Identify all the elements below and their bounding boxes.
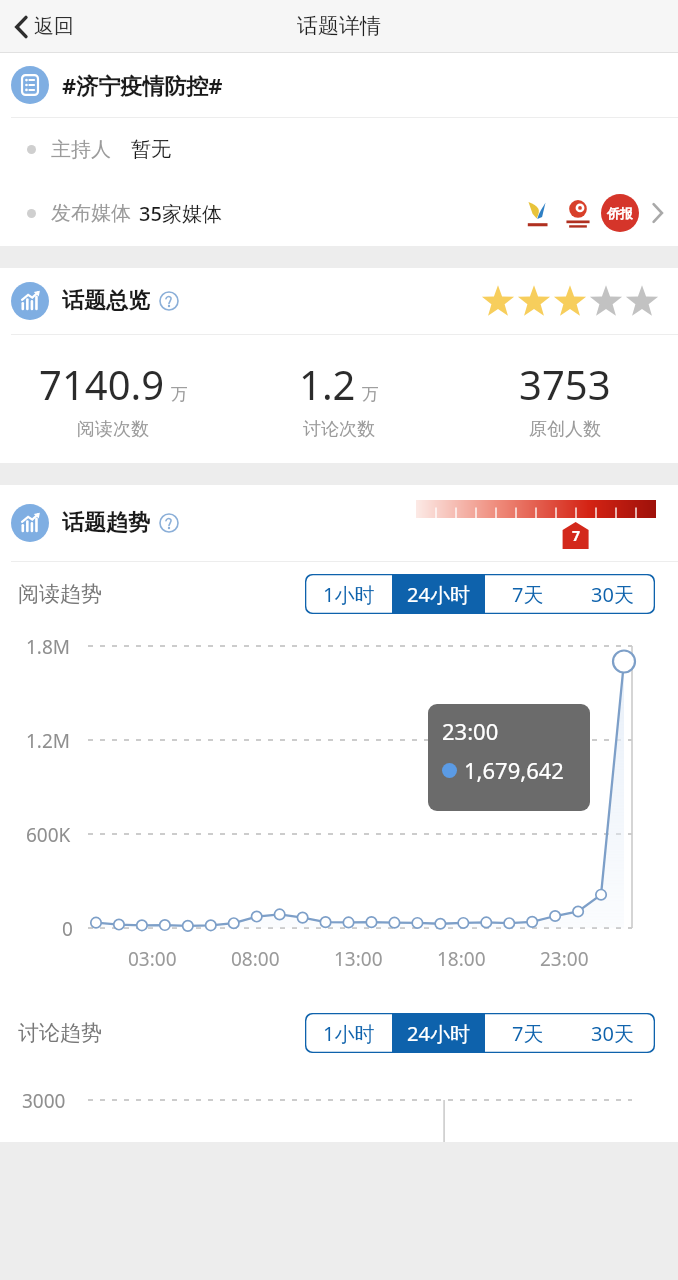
staticText: 08:00 [231,946,280,972]
staticText: 讨论趋势 [18,1020,102,1046]
button[interactable]: 热度等级 7 [416,499,656,547]
button[interactable]: 24小时 [392,574,485,614]
staticText: 返回 [34,14,74,39]
staticText: 话题趋势 [62,509,150,537]
staticText: 话题总览 [62,287,150,315]
button[interactable]: 24小时 [392,1013,485,1053]
button[interactable]: 1.2 [226,357,452,441]
button[interactable]: 30天 [570,1013,655,1053]
staticText: 600K [26,822,71,848]
staticText: 30天 [591,581,634,608]
staticText: 话题详情 [297,13,381,39]
staticText: 1,679,642 [464,755,564,785]
staticText: 7天 [512,581,544,608]
staticText: 18:00 [437,946,486,972]
staticText: 7天 [512,1020,544,1047]
staticText: 3753 [519,357,611,411]
staticText: 1小时 [323,581,375,608]
staticText: 7 [572,526,581,545]
staticText: 13:00 [334,946,383,972]
staticText: 1.8M [26,634,71,660]
staticText: 7140.9 [39,357,165,411]
button[interactable]: #济宁疫情防控# [0,53,678,117]
other: 返回 [14,15,29,39]
button[interactable]: 1小时 [305,574,392,614]
staticText: 23:00 [442,716,499,746]
staticText: 原创人数 [529,418,601,441]
staticText: 03:00 [128,946,177,972]
button[interactable]: 7140.9 [0,357,226,441]
button[interactable]: 返回 [0,6,90,47]
staticText: 万 [362,384,379,405]
staticText: 1.2 [299,357,356,411]
staticText: 23:00 [540,946,589,972]
staticText: 1.2M [26,728,71,754]
staticText: 3000 [22,1088,66,1114]
staticText: 30天 [591,1020,634,1047]
button[interactable]: 3753 [452,357,678,441]
staticText: 暂无 [131,137,171,162]
staticText: 0 [62,916,73,942]
staticText: 主持人 [51,137,111,162]
staticText: 24小时 [407,581,470,608]
button[interactable]: 1小时 [305,1013,392,1053]
staticText: 侨报 [607,205,633,221]
staticText: 阅读次数 [77,418,149,441]
other: 查看媒体列表 [651,200,664,226]
staticText: #济宁疫情防控# [62,70,223,100]
button[interactable]: 7天 [485,1013,570,1053]
button[interactable]: 30天 [570,574,655,614]
staticText: 发布媒体 [51,201,131,226]
staticText: 1小时 [323,1020,375,1047]
staticText: 35家媒体 [139,200,222,227]
button[interactable]: 主持人 [0,118,678,180]
staticText: 阅读趋势 [18,581,102,607]
staticText: 24小时 [407,1020,470,1047]
staticText: 万 [171,384,188,405]
button[interactable]: 发布媒体 [0,180,678,246]
staticText: 讨论次数 [303,418,375,441]
button[interactable]: 7天 [485,574,570,614]
button[interactable]: 话题总览 [0,268,678,334]
